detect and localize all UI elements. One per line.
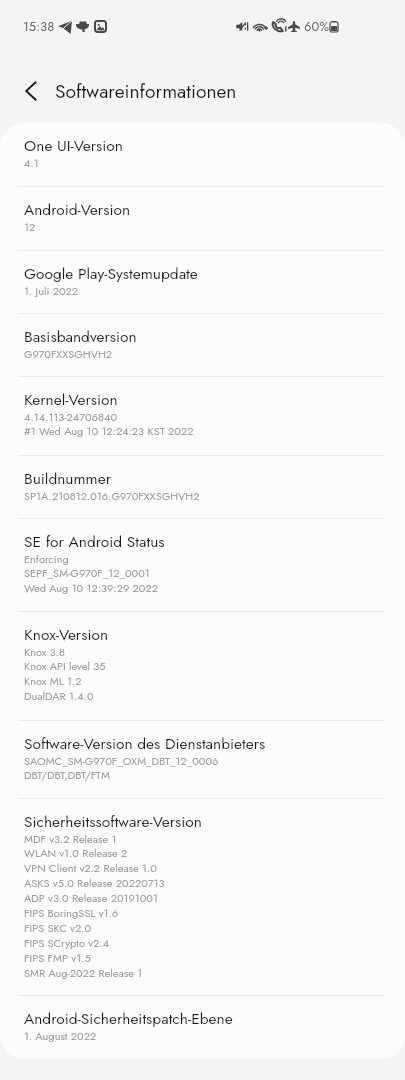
staticText: Android-Version xyxy=(24,198,131,220)
button[interactable]: Software-Version des Dienstanbieters xyxy=(0,721,405,798)
staticText: FIPS SCrypto v2.4 xyxy=(24,935,110,951)
staticText: DualDAR 1.4.0 xyxy=(24,688,94,704)
staticText: 4.14.113-24706840 xyxy=(24,409,117,425)
staticText: Knox ML 1.2 xyxy=(24,673,82,689)
button[interactable]: Kernel-Version xyxy=(0,377,405,455)
staticText: VPN Client v2.2 Release 1.0 xyxy=(24,860,157,876)
button[interactable]: Google Play-Systemupdate xyxy=(0,251,405,313)
staticText: Buildnummer xyxy=(24,467,111,489)
staticText: SEPF_SM-G970F_12_0001 xyxy=(24,565,150,581)
staticText: FIPS SKC v2.0 xyxy=(24,920,92,936)
staticText: One UI-Version xyxy=(24,134,123,156)
staticText: FIPS FMP v1.5 xyxy=(24,950,91,966)
button[interactable]: Android-Version xyxy=(0,187,405,250)
staticText: Enforcing xyxy=(24,551,69,567)
staticText: WLAN v1.0 Release 2 xyxy=(24,845,128,861)
staticText: Basisbandversion xyxy=(24,325,137,347)
staticText: 4.1 xyxy=(24,155,39,171)
staticText: SE for Android Status xyxy=(24,530,165,552)
button[interactable]: Android-Sicherheitspatch-Ebene xyxy=(0,996,405,1059)
staticText: SAOMC_SM-G970F_OXM_DBT_12_0006 xyxy=(24,753,219,769)
button[interactable]: One UI-Version xyxy=(0,123,405,186)
button[interactable]: Knox-Version xyxy=(0,612,405,720)
button[interactable]: Basisbandversion xyxy=(0,314,405,376)
button[interactable]: Buildnummer xyxy=(0,456,405,518)
staticText: Google Play-Systemupdate xyxy=(24,262,198,284)
staticText: FIPS BoringSSL v1.6 xyxy=(24,905,119,921)
staticText: Software-Version des Dienstanbieters xyxy=(24,732,266,754)
staticText: Knox API level 35 xyxy=(24,658,106,674)
staticText: 12 xyxy=(24,219,36,235)
staticText: 1. Juli 2022 xyxy=(24,283,79,299)
button[interactable]: SE for Android Status xyxy=(0,519,405,611)
staticText: MDF v3.2 Release 1 xyxy=(24,831,117,847)
staticText: 60% xyxy=(304,17,330,36)
staticText: G970FXXSGHVH2 xyxy=(24,346,113,362)
button[interactable]: Sicherheitssoftware-Version xyxy=(0,799,405,995)
staticText: Knox-Version xyxy=(24,623,109,645)
staticText: 1. August 2022 xyxy=(24,1028,97,1044)
staticText: Sicherheitssoftware-Version xyxy=(24,810,202,832)
staticText: Kernel-Version xyxy=(24,388,118,410)
staticText: DBT/DBT,DBT/FTM xyxy=(24,767,110,783)
staticText: ADP v3.0 Release 20191001 xyxy=(24,890,158,906)
staticText: ASKS v5.0 Release 20220713 xyxy=(24,875,165,891)
staticText: Softwareinformationen xyxy=(55,77,237,105)
staticText: Knox 3.8 xyxy=(24,644,65,660)
staticText: Android-Sicherheitspatch-Ebene xyxy=(24,1007,233,1029)
button[interactable]: Back xyxy=(9,69,53,113)
staticText: Wed Aug 10 12:39:29 2022 xyxy=(24,580,158,596)
staticText: SP1A.210812.016.G970FXXSGHVH2 xyxy=(24,488,200,504)
staticText: #1 Wed Aug 10 12:24:23 KST 2022 xyxy=(24,423,194,439)
staticText: 15:38 xyxy=(23,17,55,36)
staticText: SMR Aug-2022 Release 1 xyxy=(24,965,143,981)
